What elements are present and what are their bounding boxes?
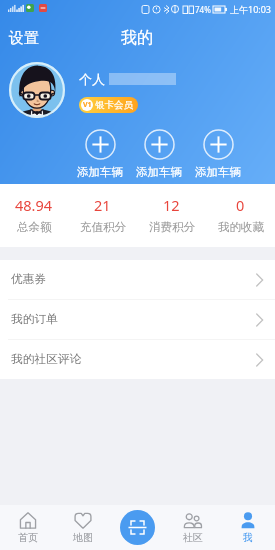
staticText: 上午10:03 xyxy=(230,3,272,15)
staticText: 添加车辆 xyxy=(195,165,241,179)
staticText: 消费积分 xyxy=(149,220,195,234)
button[interactable]: Scan xyxy=(120,510,155,545)
button[interactable]: 首页 xyxy=(0,505,55,550)
button[interactable]: Profile avatar xyxy=(9,62,65,118)
staticText: 我的社区评论 xyxy=(11,352,82,367)
button[interactable]: 设置 xyxy=(9,29,39,48)
staticText: 21 xyxy=(94,195,111,215)
staticText: 银卡会员 xyxy=(95,99,133,111)
staticText: 12 xyxy=(163,195,180,215)
button[interactable]: 优惠券 xyxy=(0,260,275,299)
staticText: 我的订单 xyxy=(11,312,58,327)
button[interactable]: 0 xyxy=(206,184,275,247)
staticText: 总余额 xyxy=(17,220,52,234)
staticText: 个人 xyxy=(79,71,105,87)
staticText: 优惠券 xyxy=(11,272,47,287)
staticText: 我的收藏 xyxy=(218,220,264,234)
staticText: 我的 xyxy=(121,28,153,48)
staticText: 首页 xyxy=(18,531,38,544)
button[interactable]: 添加车辆 xyxy=(190,129,246,179)
staticText: 48.94 xyxy=(15,195,53,215)
staticText: 0 xyxy=(236,195,245,215)
staticText: 地图 xyxy=(73,531,93,544)
button[interactable]: 添加车辆 xyxy=(72,129,128,179)
staticText: 充值积分 xyxy=(80,220,126,234)
button[interactable]: 21 xyxy=(68,184,137,247)
button[interactable]: 添加车辆 xyxy=(131,129,187,179)
button[interactable]: 地图 xyxy=(55,505,110,550)
staticText: 我 xyxy=(243,531,253,544)
staticText: 添加车辆 xyxy=(77,165,123,179)
button[interactable]: 我的社区评论 xyxy=(0,340,275,379)
button[interactable]: 我 xyxy=(220,505,275,550)
button[interactable]: 社区 xyxy=(165,505,220,550)
staticText: 社区 xyxy=(183,531,203,544)
button[interactable]: 12 xyxy=(137,184,206,247)
button[interactable]: 我的订单 xyxy=(0,300,275,339)
button[interactable]: V1 xyxy=(79,97,138,113)
staticText: V1 xyxy=(83,100,92,110)
staticText: 添加车辆 xyxy=(136,165,182,179)
button[interactable]: 48.94 xyxy=(0,184,68,247)
staticText: 74% xyxy=(195,4,211,15)
